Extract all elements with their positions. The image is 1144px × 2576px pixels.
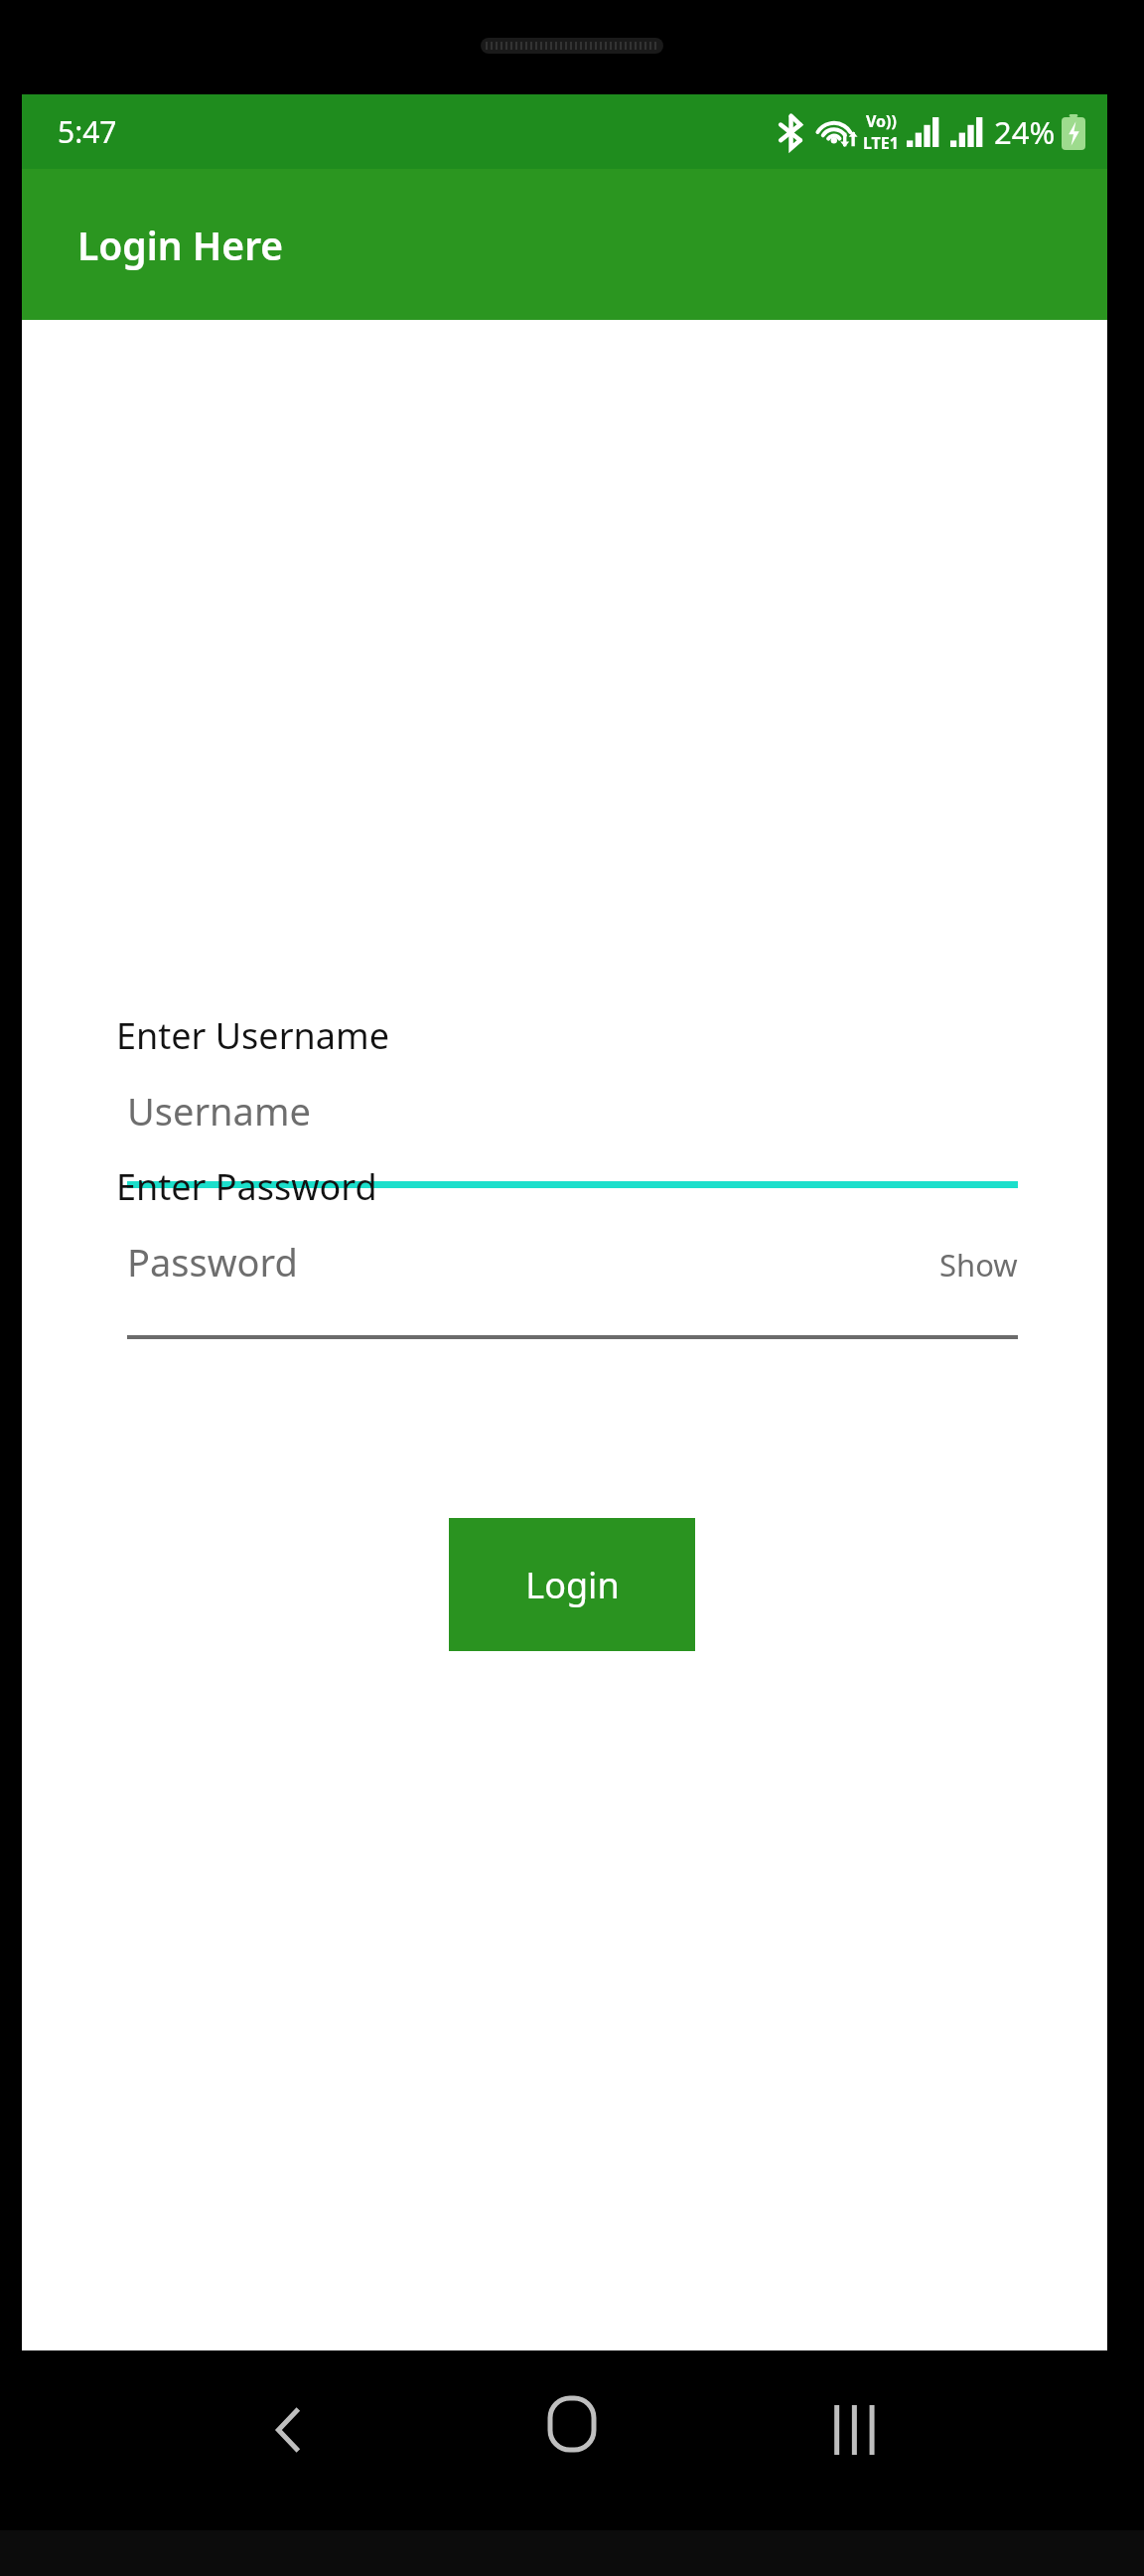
button[interactable]: Back (228, 2370, 348, 2490)
button[interactable]: Password (127, 1236, 1018, 1339)
staticText: Show (939, 1244, 1018, 1286)
staticText: 24% (994, 111, 1056, 153)
staticText: Enter Username (116, 1011, 389, 1060)
button[interactable]: Home (512, 2364, 632, 2484)
button[interactable]: Recent apps (796, 2370, 916, 2490)
button[interactable]: Login (449, 1518, 695, 1651)
button[interactable]: Show (939, 1236, 1018, 1286)
staticText: Login Here (77, 219, 284, 271)
staticText: Login (525, 1561, 620, 1609)
button[interactable]: Username (127, 1085, 1018, 1188)
staticText: Enter Password (116, 1162, 377, 1211)
staticText: Password (127, 1236, 298, 1288)
staticText: 5:47 (58, 111, 117, 152)
staticText: Vo)) (866, 110, 897, 132)
staticText: Username (127, 1085, 311, 1136)
staticText: LTE1 (863, 132, 899, 154)
